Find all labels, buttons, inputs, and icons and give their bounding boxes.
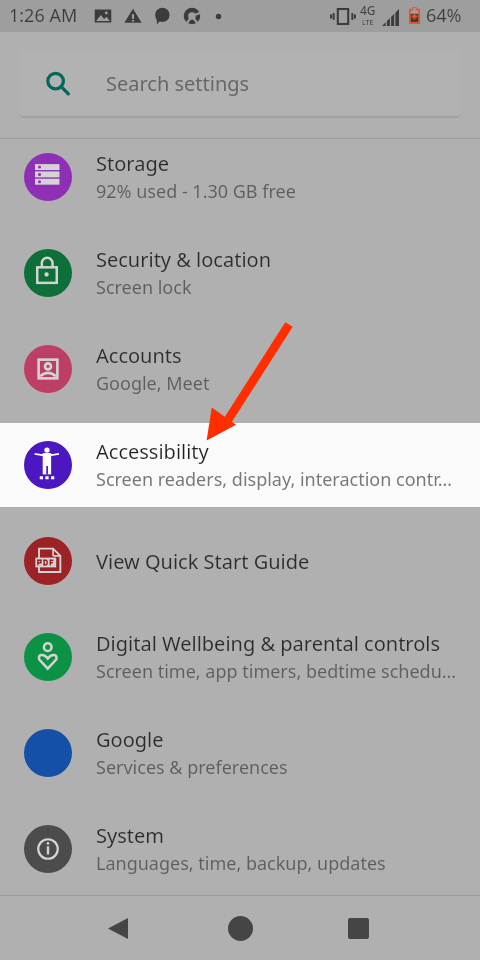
staticText: Google, Meet <box>96 371 210 396</box>
staticText: Storage <box>96 150 169 177</box>
staticText: Security & location <box>96 246 272 273</box>
button[interactable]: Storage <box>0 139 480 225</box>
button[interactable]: Google <box>0 705 480 801</box>
button[interactable]: Home <box>214 902 266 954</box>
button[interactable]: System <box>0 801 480 897</box>
button[interactable]: Recent apps <box>332 902 384 954</box>
staticText: Search settings <box>106 70 250 97</box>
staticText: Digital Wellbeing & parental controls <box>96 630 441 657</box>
button[interactable]: Accessibility <box>0 417 480 513</box>
staticText: Screen lock <box>96 275 192 300</box>
staticText: Languages, time, backup, updates <box>96 851 386 876</box>
staticText: Screen readers, display, interaction con… <box>96 467 452 492</box>
staticText: 4G <box>360 2 376 18</box>
button[interactable]: Digital Wellbeing & parental controls <box>0 609 480 705</box>
staticText: Services & preferences <box>96 755 288 780</box>
staticText: 92% used - 1.30 GB free <box>96 179 296 204</box>
staticText: System <box>96 822 164 849</box>
staticText: Accessibility <box>96 438 209 465</box>
button[interactable]: Security & location <box>0 225 480 321</box>
button[interactable]: Back <box>92 902 144 954</box>
staticText: 64% <box>426 3 462 28</box>
staticText: View Quick Start Guide <box>96 548 310 575</box>
staticText: Screen time, app timers, bedtime schedu… <box>96 659 456 684</box>
button[interactable]: View Quick Start Guide <box>0 513 480 609</box>
staticText: Google <box>96 726 164 753</box>
staticText: LTE <box>362 18 374 28</box>
button[interactable]: Search <box>20 51 460 116</box>
button[interactable]: Accounts <box>0 321 480 417</box>
staticText: 1:26 AM <box>9 3 78 28</box>
staticText: Accounts <box>96 342 182 369</box>
other: Search <box>46 72 70 96</box>
